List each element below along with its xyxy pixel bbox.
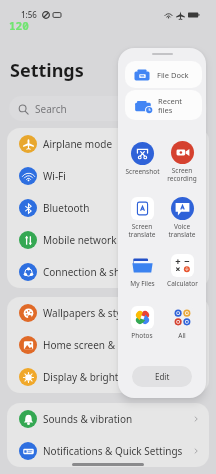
button[interactable]: Calculator [162, 254, 202, 288]
button[interactable]: My Files [122, 254, 162, 288]
staticText: Connection & sharing [43, 265, 145, 279]
button[interactable]: Screen translate [122, 197, 162, 239]
button[interactable]: Bluetooth [7, 192, 209, 224]
staticText: My Files [130, 279, 155, 288]
button[interactable]: Screenshot [122, 142, 162, 176]
staticText: Screen translate [128, 222, 156, 239]
staticText: File Dock [157, 70, 189, 80]
button[interactable]: Wi-Fi [7, 160, 209, 192]
button[interactable]: Recent files [125, 90, 202, 120]
staticText: Airplane mode [43, 137, 113, 151]
staticText: Home screen & Lock screen [43, 338, 173, 352]
button[interactable]: File Dock [125, 61, 202, 88]
button[interactable]: All [162, 306, 202, 340]
staticText: Edit [155, 371, 170, 382]
staticText: Photos [131, 331, 153, 340]
staticText: 120 [9, 18, 29, 33]
staticText: Voice translate [168, 222, 196, 239]
staticText: Settings [10, 58, 84, 83]
button[interactable]: Screen recording [162, 141, 202, 183]
staticText: All [178, 331, 186, 340]
button[interactable]: Edit [132, 366, 192, 387]
button[interactable]: Wallpapers & style [7, 297, 209, 329]
button[interactable]: Notifications & Quick Settings [7, 435, 209, 467]
staticText: Screen recording [167, 166, 197, 183]
staticText: Bluetooth [43, 201, 90, 215]
staticText: Mobile network [43, 233, 117, 247]
staticText: Recent files [158, 96, 183, 115]
button[interactable]: Airplane mode [7, 128, 209, 160]
button[interactable]: Mobile network [7, 224, 209, 256]
staticText: Calculator [167, 279, 198, 288]
staticText: Display & brightness [43, 370, 140, 384]
button[interactable]: Home screen & Lock screen [7, 329, 209, 361]
button[interactable]: Sounds & vibration [7, 403, 209, 435]
button[interactable]: Display & brightness [7, 361, 209, 393]
staticText: Sounds & vibration [43, 412, 133, 426]
button[interactable]: Connection & sharing [7, 256, 209, 288]
staticText: Search [35, 102, 67, 116]
staticText: 1:56 [21, 9, 37, 20]
button[interactable]: Voice translate [162, 197, 202, 239]
staticText: Wallpapers & style [43, 306, 130, 320]
staticText: Screenshot [125, 167, 160, 176]
button[interactable]: Search [9, 96, 207, 121]
button[interactable]: Photos [122, 306, 162, 340]
staticText: Notifications & Quick Settings [43, 444, 183, 458]
staticText: Wi-Fi [43, 169, 66, 183]
